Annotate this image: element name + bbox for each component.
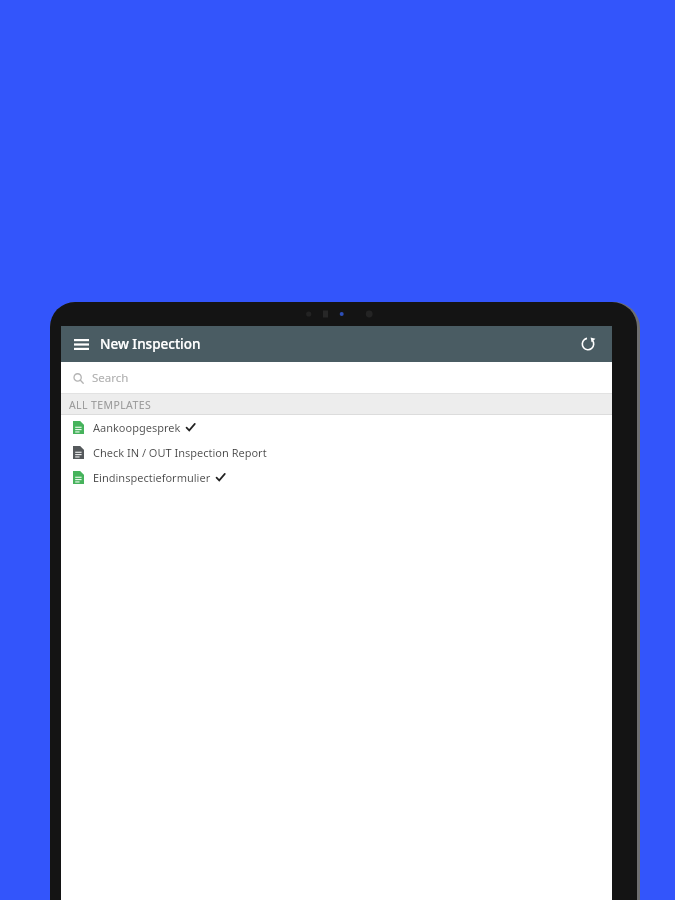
button[interactable]: Check IN / OUT Inspection Report — [61, 440, 612, 465]
staticText: Eindinspectieformulier — [93, 470, 211, 485]
button[interactable]: Refresh — [574, 330, 602, 358]
staticText: Check IN / OUT Inspection Report — [93, 445, 267, 460]
staticText: New Inspection — [100, 335, 201, 353]
button[interactable]: Search — [61, 362, 612, 394]
button[interactable]: Open navigation menu — [68, 331, 94, 357]
staticText: Aankoopgesprek — [93, 420, 181, 435]
button[interactable]: Aankoopgesprek — [61, 415, 612, 440]
staticText: Search — [92, 370, 129, 386]
staticText: ALL TEMPLATES — [69, 398, 152, 412]
button[interactable]: Eindinspectieformulier — [61, 465, 612, 490]
